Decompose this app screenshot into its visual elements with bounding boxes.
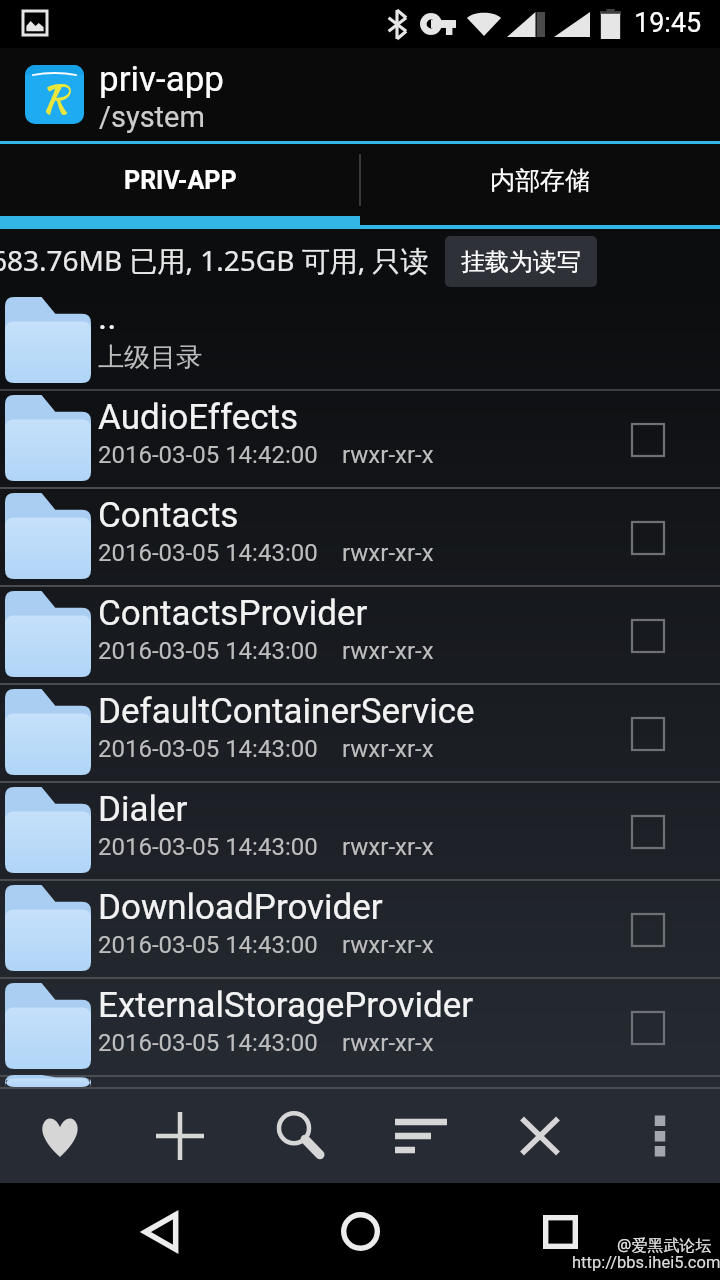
button[interactable]: Select item [618,900,678,960]
staticText: ExternalStorageProvider [98,985,474,1026]
button[interactable]: 内部存储 [360,144,720,216]
button[interactable]: R [0,48,720,141]
staticText: 683.76MB 已用, 1.25GB 可用, 只读 [0,241,429,279]
staticText: ContactsProvider [98,593,368,634]
staticText: 19:45 [634,7,702,39]
staticText: 2016-03-05 14:42:00 [98,441,318,469]
staticText: /system [99,100,205,134]
staticText: 2016-03-05 14:43:00 [98,931,318,959]
staticText: rwxr-xr-x [342,539,434,567]
button[interactable]: DefaultContainerService [0,685,720,783]
staticText: DefaultContainerService [98,691,475,732]
button[interactable]: .. [0,293,720,391]
staticText: Contacts [98,495,239,536]
button[interactable]: Select item [618,802,678,862]
button[interactable]: Select item [618,704,678,764]
button[interactable]: Dialer [0,783,720,881]
staticText: rwxr-xr-x [342,1029,434,1057]
staticText: AudioEffects [98,397,299,438]
staticText: rwxr-xr-x [342,637,434,665]
staticText: .. [98,297,117,338]
button[interactable]: ContactsProvider [0,587,720,685]
button[interactable]: Favorites [0,1089,120,1183]
button[interactable]: Close [480,1089,600,1183]
button[interactable]: DownloadProvider [0,881,720,979]
button[interactable]: Select item [618,508,678,568]
button[interactable]: Select item [618,606,678,666]
staticText: http://bbs.ihei5.com [572,1253,720,1272]
button[interactable]: ExternalStorageProvider [0,979,720,1077]
staticText: 2016-03-05 14:43:00 [98,735,318,763]
staticText: priv-app [99,59,224,100]
staticText: 上级目录 [98,341,202,374]
staticText: PRIV-APP [124,166,237,195]
staticText: rwxr-xr-x [342,441,434,469]
staticText: 2016-03-05 14:43:00 [98,833,318,861]
button[interactable]: Contacts [0,489,720,587]
staticText: 挂载为读写 [461,247,581,277]
button[interactable]: Add [120,1089,240,1183]
button[interactable]: Recents [500,1183,620,1280]
staticText: 2016-03-05 14:43:00 [98,539,318,567]
button[interactable]: PRIV-APP [0,144,360,216]
staticText: 内部存储 [490,165,590,196]
staticText: 2016-03-05 14:43:00 [98,637,318,665]
staticText: 2016-03-05 14:43:00 [98,1029,318,1057]
button[interactable]: AudioEffects [0,391,720,489]
button[interactable]: 挂载为读写 [445,236,597,287]
button[interactable]: Search [240,1089,360,1183]
button[interactable]: Back [100,1183,220,1280]
staticText: @爱黑武论坛 [617,1234,712,1256]
button[interactable]: Sort [360,1089,480,1183]
staticText: DownloadProvider [98,887,383,928]
staticText: R [41,71,68,124]
staticText: rwxr-xr-x [342,833,434,861]
button[interactable]: Select item [618,410,678,470]
staticText: rwxr-xr-x [342,735,434,763]
staticText: Dialer [98,789,188,830]
button[interactable]: More options [600,1089,720,1183]
staticText: rwxr-xr-x [342,931,434,959]
button[interactable]: Home [300,1183,420,1280]
button[interactable]: Select item [618,998,678,1058]
button[interactable] [0,1077,720,1089]
